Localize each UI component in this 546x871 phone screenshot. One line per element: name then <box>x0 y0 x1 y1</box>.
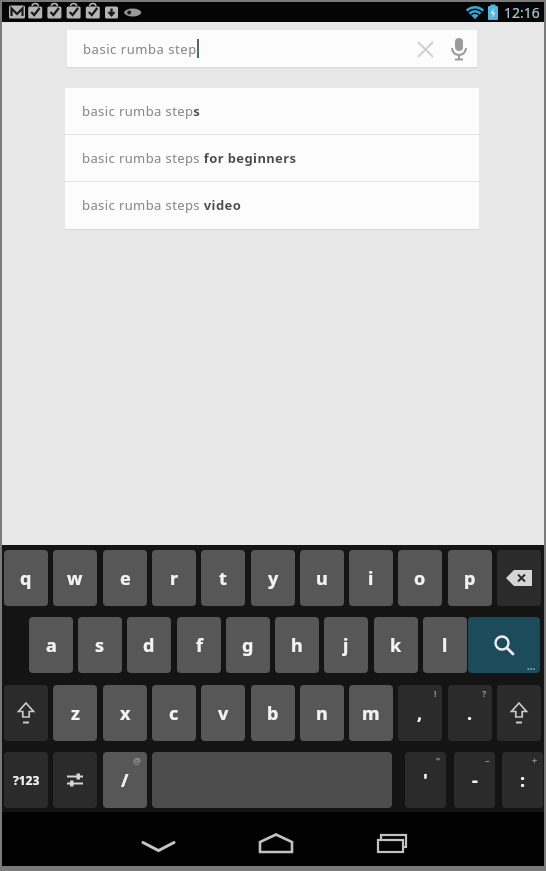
button[interactable]: ... <box>468 617 540 673</box>
staticText: c <box>169 701 179 726</box>
button[interactable]: c <box>152 685 196 741</box>
button[interactable]: j <box>324 617 368 673</box>
button[interactable] <box>364 812 420 866</box>
button[interactable]: basic rumba steps video <box>65 182 479 228</box>
staticText: s <box>95 633 105 658</box>
staticText: v <box>218 701 229 726</box>
staticText: + <box>532 754 538 766</box>
button[interactable]: m <box>349 685 393 741</box>
button[interactable]: q <box>4 550 48 606</box>
button[interactable]: d <box>127 617 171 673</box>
staticText: r <box>170 566 179 591</box>
button[interactable]: e <box>103 550 147 606</box>
staticText: ? <box>482 687 487 699</box>
staticText: y <box>268 566 279 591</box>
staticText: j <box>343 633 349 658</box>
staticText: p <box>464 566 476 591</box>
staticText: h <box>291 633 303 658</box>
button[interactable]: basic rumba steps <box>65 88 479 134</box>
button[interactable]: ?123 <box>4 752 48 808</box>
staticText: ! <box>434 687 437 699</box>
staticText: u <box>316 566 328 591</box>
button[interactable]: w <box>53 550 97 606</box>
button[interactable]: o <box>398 550 442 606</box>
button[interactable]: x <box>103 685 147 741</box>
button[interactable]: p <box>448 550 492 606</box>
button[interactable]: : <box>502 752 543 808</box>
staticText: d <box>143 633 155 658</box>
button[interactable]: v <box>201 685 245 741</box>
staticText: ' <box>423 768 428 793</box>
button[interactable]: i <box>349 550 393 606</box>
button[interactable]: z <box>53 685 97 741</box>
staticText: m <box>362 701 380 726</box>
button[interactable]: ' <box>405 752 446 808</box>
staticText: 12:16 <box>504 3 540 22</box>
button[interactable]: , <box>398 685 442 741</box>
staticText: o <box>414 566 426 591</box>
button[interactable]: - <box>454 752 495 808</box>
button[interactable]: f <box>177 617 221 673</box>
button[interactable]: a <box>29 617 73 673</box>
button[interactable]: basic rumba steps for beginners <box>65 135 479 181</box>
staticText: q <box>20 566 32 591</box>
staticText: i <box>368 566 374 591</box>
button[interactable] <box>4 685 48 741</box>
button[interactable]: u <box>300 550 344 606</box>
button[interactable]: n <box>300 685 344 741</box>
staticText: - <box>472 768 478 793</box>
staticText: : <box>520 768 526 793</box>
button[interactable]: g <box>226 617 270 673</box>
staticText: basic rumba steps <box>82 102 201 120</box>
button[interactable] <box>497 550 541 606</box>
staticText: – <box>485 754 490 766</box>
button[interactable]: s <box>78 617 122 673</box>
staticText: basic rumba steps video <box>82 196 242 214</box>
staticText: z <box>71 701 80 726</box>
staticText: " <box>436 754 441 766</box>
button[interactable]: b <box>251 685 295 741</box>
button[interactable]: k <box>374 617 418 673</box>
staticText: ?123 <box>13 772 40 788</box>
staticText: a <box>46 633 57 658</box>
button[interactable]: y <box>251 550 295 606</box>
button[interactable]: / <box>103 752 147 808</box>
staticText: basic rumba steps for beginners <box>82 149 297 167</box>
staticText: g <box>242 633 254 658</box>
button[interactable] <box>53 752 97 808</box>
button[interactable]: r <box>152 550 196 606</box>
button[interactable]: t <box>201 550 245 606</box>
staticText: , <box>417 701 423 726</box>
staticText: l <box>442 633 448 658</box>
staticText: ... <box>527 659 536 673</box>
button[interactable] <box>497 685 541 741</box>
staticText: f <box>196 633 203 658</box>
staticText: b <box>267 701 279 726</box>
staticText: k <box>390 633 402 658</box>
staticText: w <box>67 566 83 591</box>
button[interactable] <box>130 812 186 866</box>
button[interactable]: . <box>448 685 492 741</box>
button[interactable]: basic rumba step <box>67 30 477 67</box>
staticText: basic rumba step <box>83 40 197 58</box>
staticText: t <box>219 566 227 591</box>
staticText: / <box>121 768 129 793</box>
button[interactable]: h <box>275 617 319 673</box>
button[interactable]: l <box>423 617 467 673</box>
staticText: . <box>467 701 473 726</box>
button[interactable] <box>248 812 304 866</box>
staticText: @ <box>133 754 142 766</box>
staticText: x <box>120 701 131 726</box>
staticText: n <box>316 701 328 726</box>
staticText: e <box>120 566 131 591</box>
